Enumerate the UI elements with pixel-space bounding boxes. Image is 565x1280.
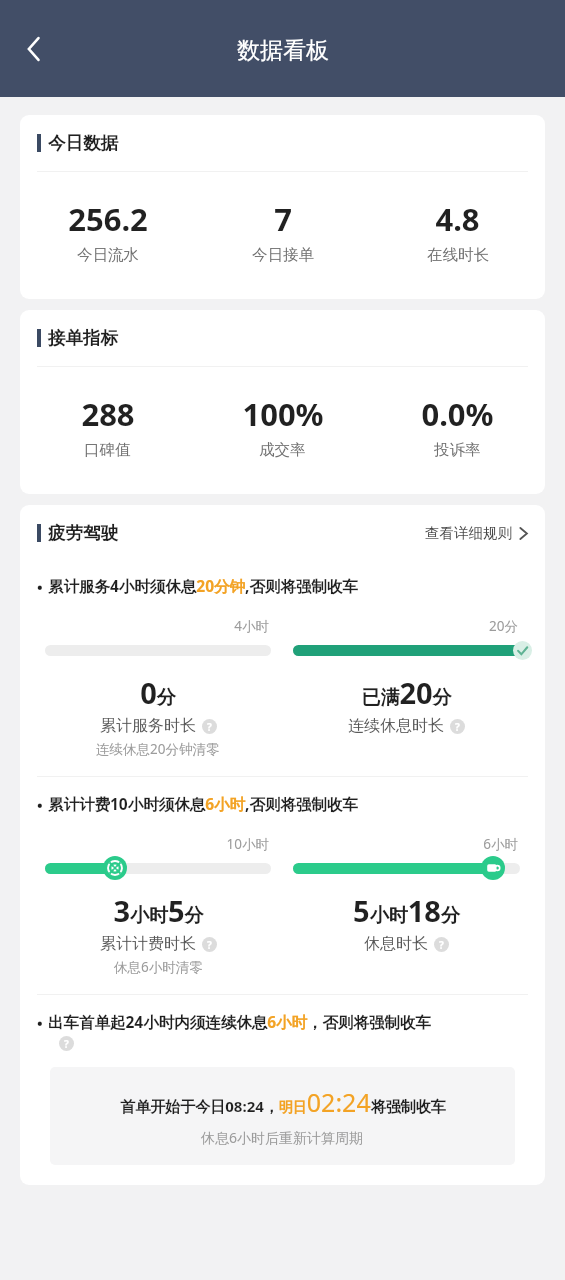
staticText: 口碑值 <box>84 440 131 460</box>
staticText: 出车首单起24小时内须连续休息6小时，否则将强制收车 <box>48 1011 432 1032</box>
staticText: 256.2 <box>68 198 148 240</box>
staticText: ? <box>207 720 212 734</box>
staticText: 今日数据 <box>48 132 118 154</box>
staticText: ? <box>439 938 444 952</box>
staticText: 首单开始于今日08:24，明日02:24将强制收车 <box>120 1085 446 1119</box>
staticText: • <box>37 795 43 815</box>
staticText: 20分 <box>293 617 518 635</box>
staticText: 休息6小时后重新计算周期 <box>201 1128 364 1147</box>
staticText: 休息6小时清零 <box>114 958 203 976</box>
staticText: 6小时 <box>293 835 518 853</box>
staticText: 累计服务时长 <box>100 716 196 736</box>
staticText: ? <box>207 938 212 952</box>
staticText: 数据看板 <box>237 36 329 65</box>
staticText: 4.8 <box>435 198 480 240</box>
staticText: 在线时长 <box>427 245 489 265</box>
staticText: 今日流水 <box>77 245 139 265</box>
staticText: 接单指标 <box>48 327 118 349</box>
staticText: 休息时长 <box>364 934 428 954</box>
staticText: 10小时 <box>45 835 269 853</box>
button[interactable]: Back <box>10 25 58 73</box>
staticText: 288 <box>81 393 135 435</box>
staticText: 累计服务4小时须休息20分钟,否则将强制收车 <box>48 575 359 596</box>
staticText: 100% <box>242 393 324 435</box>
staticText: 累计计费10小时须休息6小时,否则将强制收车 <box>48 793 359 814</box>
staticText: 今日接单 <box>252 245 314 265</box>
staticText: • <box>37 577 43 597</box>
staticText: 查看详细规则 <box>425 524 512 542</box>
staticText: 0.0% <box>421 393 494 435</box>
staticText: • <box>37 1013 43 1033</box>
staticText: 7 <box>274 198 292 240</box>
button[interactable]: 查看详细规则 <box>425 518 528 548</box>
staticText: 成交率 <box>259 440 306 460</box>
staticText: 4小时 <box>45 617 269 635</box>
staticText: 已满20分 <box>361 673 452 712</box>
staticText: ? <box>64 1037 69 1051</box>
staticText: 投诉率 <box>434 440 481 460</box>
staticText: 连续休息时长 <box>348 716 444 736</box>
staticText: 0分 <box>140 673 176 712</box>
staticText: 连续休息20分钟清零 <box>96 740 220 758</box>
staticText: 疲劳驾驶 <box>48 522 118 544</box>
staticText: 3小时5分 <box>113 891 204 930</box>
staticText: 累计计费时长 <box>100 934 196 954</box>
staticText: 5小时18分 <box>353 891 460 930</box>
staticText: ? <box>455 720 460 734</box>
